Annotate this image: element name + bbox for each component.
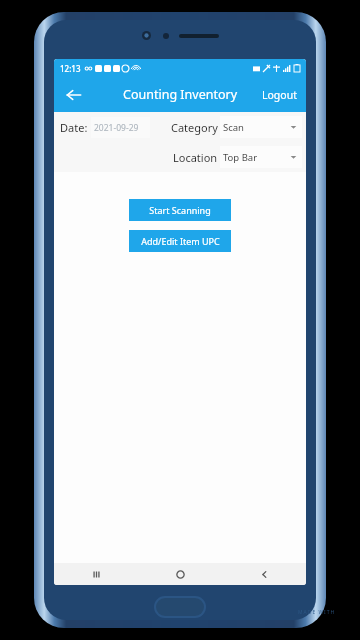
staticText: Counting Inventory <box>123 86 238 103</box>
staticText: Start Scanning <box>149 204 211 216</box>
staticText: Date: <box>60 120 88 135</box>
button[interactable]: Start Scanning <box>129 199 231 221</box>
button[interactable]: Home <box>138 563 222 585</box>
staticText: 12:13 <box>60 63 81 74</box>
staticText: Logout <box>262 88 297 102</box>
button[interactable]: Top Bar <box>220 146 302 168</box>
button[interactable]: Scan <box>220 116 302 138</box>
staticText: Location <box>173 150 218 165</box>
staticText: MADE WITH <box>298 609 336 616</box>
button[interactable]: 2021-09-29 <box>91 117 150 138</box>
staticText: Scan <box>223 121 244 134</box>
staticText: Add/Edit Item UPC <box>141 235 220 247</box>
button[interactable]: Add/Edit Item UPC <box>129 230 231 252</box>
staticText: Top Bar <box>223 151 258 164</box>
button[interactable]: Back <box>222 563 306 585</box>
button[interactable]: Back <box>60 81 88 109</box>
button[interactable]: Recents <box>54 563 138 585</box>
staticText: Category <box>171 120 218 135</box>
staticText: 2021-09-29 <box>94 122 139 134</box>
button[interactable]: Logout <box>253 82 306 108</box>
